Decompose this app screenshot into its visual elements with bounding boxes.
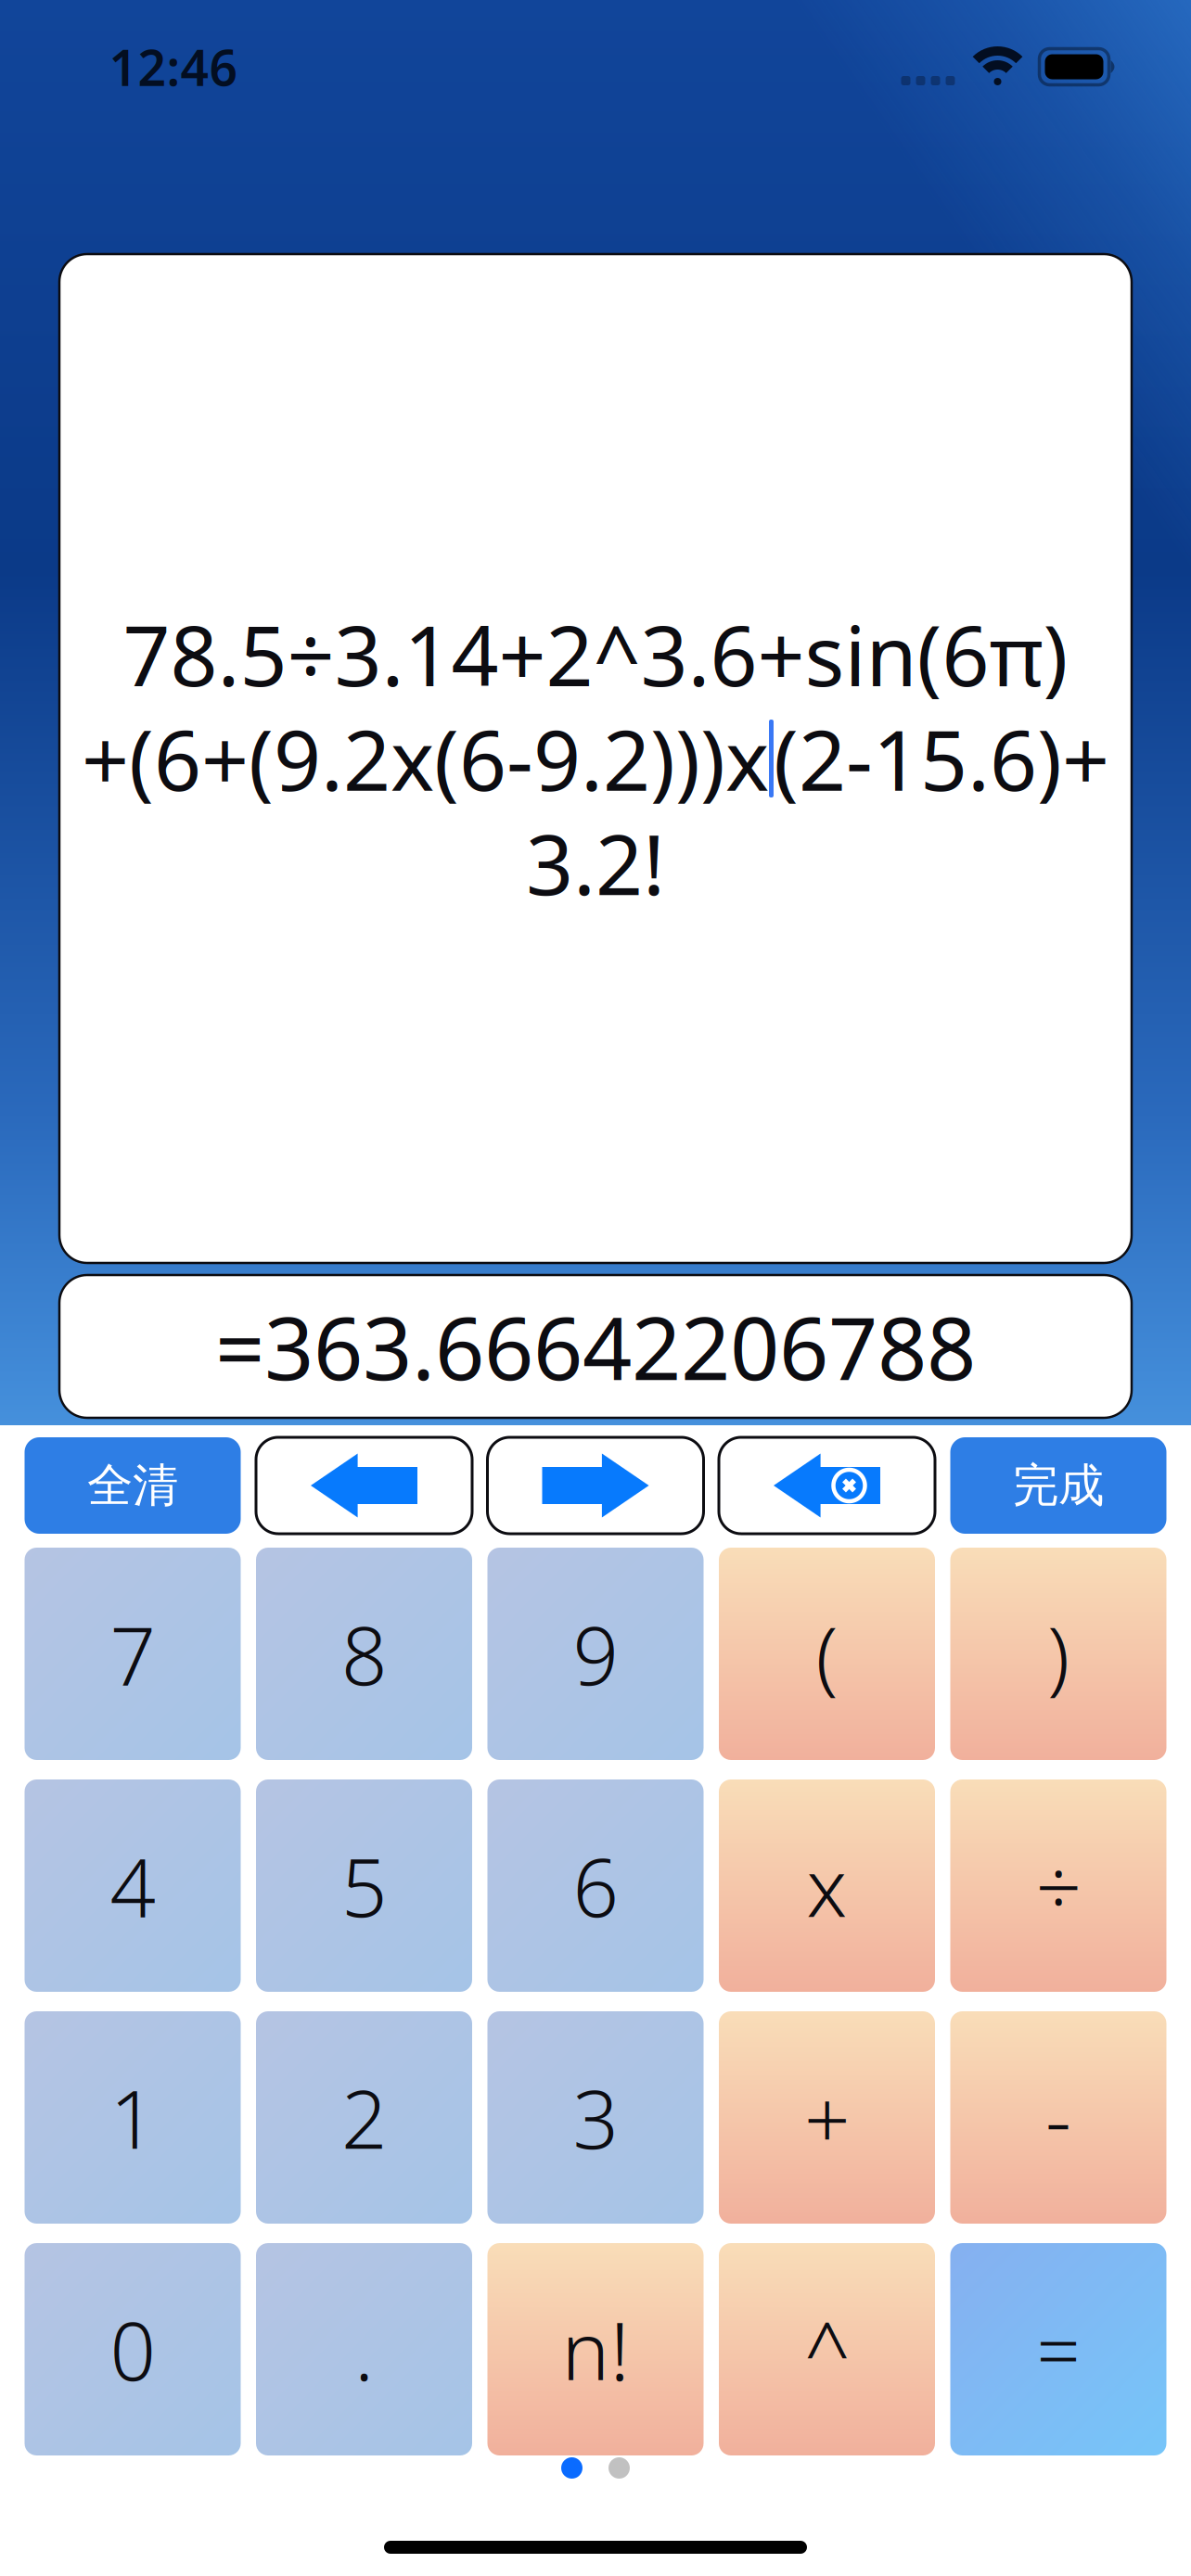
staticText: 0 — [110, 2296, 155, 2403]
button[interactable]: 4 — [25, 1779, 241, 1992]
staticText: = — [1037, 2298, 1080, 2400]
staticText: ) — [1047, 1600, 1069, 1707]
button[interactable]: 5 — [256, 1779, 472, 1992]
button[interactable]: 完成 — [950, 1437, 1166, 1534]
staticText: 8 — [341, 1600, 387, 1707]
button[interactable]: Page 2 — [608, 2457, 630, 2479]
button[interactable]: 0 — [25, 2243, 241, 2455]
staticText: 全清 — [87, 1457, 178, 1514]
staticText: 5 — [341, 1832, 387, 1939]
staticText: n! — [562, 2296, 629, 2403]
button[interactable]: x — [719, 1779, 935, 1992]
button[interactable]: Delete — [719, 1437, 935, 1534]
staticText: 12:46 — [109, 34, 238, 100]
staticText: . — [354, 2296, 374, 2403]
staticText: +(6+(9.2x(6-9.2)))x — [82, 704, 769, 814]
staticText: 3.2! — [526, 808, 665, 918]
staticText: 1 — [110, 2064, 155, 2171]
staticText: =363.66642206788 — [215, 1289, 976, 1404]
staticText: ÷ — [1036, 1832, 1081, 1939]
staticText: 9 — [573, 1600, 618, 1707]
button[interactable]: Page 1 — [561, 2457, 583, 2479]
staticText: 完成 — [1013, 1457, 1104, 1514]
button[interactable]: Move cursor left — [256, 1437, 472, 1534]
button[interactable]: - — [950, 2011, 1166, 2224]
staticText: 3 — [573, 2064, 618, 2171]
button[interactable]: . — [256, 2243, 472, 2455]
staticText: 2 — [341, 2064, 387, 2171]
staticText: 78.5÷3.14+2^3.6+sin(6π) — [123, 599, 1068, 709]
button[interactable]: 全清 — [25, 1437, 241, 1534]
button[interactable]: ( — [719, 1548, 935, 1760]
button[interactable]: 6 — [487, 1779, 704, 1992]
button[interactable]: ) — [950, 1548, 1166, 1760]
staticText: ( — [816, 1600, 838, 1707]
staticText: 7 — [110, 1600, 155, 1707]
staticText: + — [804, 2064, 850, 2171]
staticText: 6 — [573, 1832, 618, 1939]
button[interactable]: 3 — [487, 2011, 704, 2224]
staticText: ^ — [804, 2296, 850, 2403]
staticText: (2-15.6)+ — [774, 704, 1109, 814]
button[interactable]: 2 — [256, 2011, 472, 2224]
button[interactable]: = — [950, 2243, 1166, 2455]
staticText: x — [807, 1832, 847, 1939]
button[interactable]: 7 — [25, 1548, 241, 1760]
staticText: - — [1045, 2064, 1071, 2171]
button[interactable]: ÷ — [950, 1779, 1166, 1992]
button[interactable]: Move cursor right — [487, 1437, 704, 1534]
button[interactable]: 9 — [487, 1548, 704, 1760]
button[interactable]: + — [719, 2011, 935, 2224]
button[interactable]: ^ — [719, 2243, 935, 2455]
staticText: 4 — [110, 1832, 155, 1939]
button[interactable]: 1 — [25, 2011, 241, 2224]
button[interactable]: 8 — [256, 1548, 472, 1760]
button[interactable]: n! — [487, 2243, 704, 2455]
